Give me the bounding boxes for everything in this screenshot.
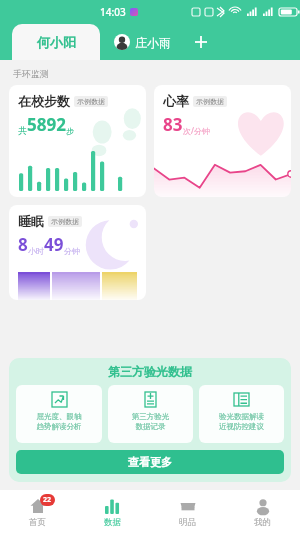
button[interactable]: 验光数据解读 近视防控建议 <box>199 385 284 443</box>
staticText: 14:03 <box>100 5 126 19</box>
staticText: 屈光度、眼轴 趋势解读分析 <box>16 412 102 432</box>
staticText: 数据 <box>104 517 121 528</box>
button[interactable]: Add profile <box>181 24 221 60</box>
button[interactable]: 第三方验光 数据记录 <box>108 385 193 443</box>
button[interactable]: 22 <box>0 490 75 534</box>
staticText: 8 <box>18 233 28 256</box>
button[interactable]: 屈光度、眼轴 趋势解读分析 <box>16 385 102 443</box>
button[interactable]: 庄小雨 <box>114 24 171 60</box>
staticText: 验光数据解读 近视防控建议 <box>199 412 284 432</box>
staticText: 手环监测 <box>13 68 49 79</box>
staticText: 小时 <box>28 246 44 256</box>
staticText: 分钟 <box>64 246 80 256</box>
button[interactable]: 数据 <box>75 490 150 534</box>
button[interactable]: 何小阳 <box>12 24 100 60</box>
staticText: 22 <box>43 495 52 505</box>
button[interactable]: 睡眠 <box>9 205 146 300</box>
staticText: 5892 <box>27 113 66 136</box>
staticText: 在校步数 <box>18 93 70 109</box>
staticText: 首页 <box>29 517 46 528</box>
button[interactable]: 在校步数 <box>9 85 146 197</box>
staticText: 第三方验光 数据记录 <box>108 412 193 432</box>
button[interactable]: 明品 <box>150 490 225 534</box>
staticText: 83 <box>163 113 183 136</box>
staticText: 我的 <box>254 517 271 528</box>
staticText: 睡眠 <box>18 213 44 229</box>
button[interactable]: 我的 <box>225 490 300 534</box>
staticText: 示例数据 <box>77 97 105 106</box>
staticText: 第三方验光数据 <box>108 364 192 379</box>
button[interactable]: 心率 <box>154 85 291 197</box>
staticText: 心率 <box>163 93 189 109</box>
staticText: 明品 <box>179 517 196 528</box>
staticText: 次/分钟 <box>183 125 210 136</box>
staticText: 庄小雨 <box>135 35 171 50</box>
staticText: 查看更多 <box>128 455 172 469</box>
staticText: 示例数据 <box>196 97 224 106</box>
staticText: 示例数据 <box>51 217 79 226</box>
staticText: 何小阳 <box>37 34 76 50</box>
staticText: 步 <box>66 126 74 136</box>
button[interactable]: 查看更多 <box>16 450 284 474</box>
staticText: 49 <box>44 233 64 256</box>
staticText: 共 <box>18 125 27 136</box>
